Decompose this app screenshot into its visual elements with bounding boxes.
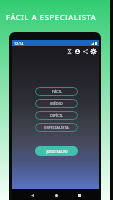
staticText: FÁCIL (52, 89, 62, 94)
staticText: JOGO SALVO (46, 149, 68, 154)
staticText: FÁCIL A ESPECIALISTA (6, 12, 97, 22)
button[interactable]: Timer (65, 46, 73, 57)
staticText: MÉDIO (50, 101, 63, 106)
button[interactable]: MÉDIO (35, 99, 78, 108)
button[interactable]: FÁCIL (35, 87, 78, 96)
staticText: ESPECIALISTA (44, 125, 69, 130)
staticText: 12:14 (14, 41, 24, 46)
button[interactable]: Back (28, 191, 36, 199)
button[interactable]: Recents (75, 191, 83, 199)
button[interactable]: Share (81, 46, 89, 57)
button[interactable]: Home (52, 191, 60, 199)
button[interactable]: ESPECIALISTA (35, 123, 78, 132)
staticText: DIFÍCIL (50, 113, 63, 118)
button[interactable]: JOGO SALVO (35, 146, 78, 156)
button[interactable]: Account (73, 46, 81, 57)
button[interactable]: DIFÍCIL (35, 111, 78, 120)
button[interactable]: Settings (89, 46, 97, 57)
